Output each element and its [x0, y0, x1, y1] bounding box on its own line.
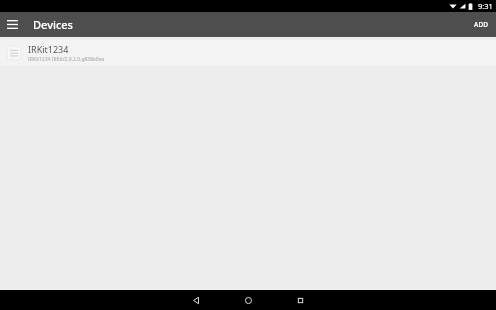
button[interactable]: Home	[229, 290, 267, 310]
staticText: 9:31	[478, 1, 493, 11]
button[interactable]: ADD	[466, 12, 496, 37]
staticText: Devices	[33, 17, 73, 32]
button[interactable]: IRKit1234	[0, 40, 496, 66]
button[interactable]: Back	[177, 290, 215, 310]
staticText: IRKit1234	[28, 43, 69, 55]
button[interactable]: Recent apps	[281, 290, 319, 310]
button[interactable]: Open navigation drawer	[0, 12, 25, 37]
staticText: IRKit1234 IRKit/2.0.2.0.g838e0ea	[28, 56, 105, 63]
staticText: ADD	[474, 20, 488, 29]
